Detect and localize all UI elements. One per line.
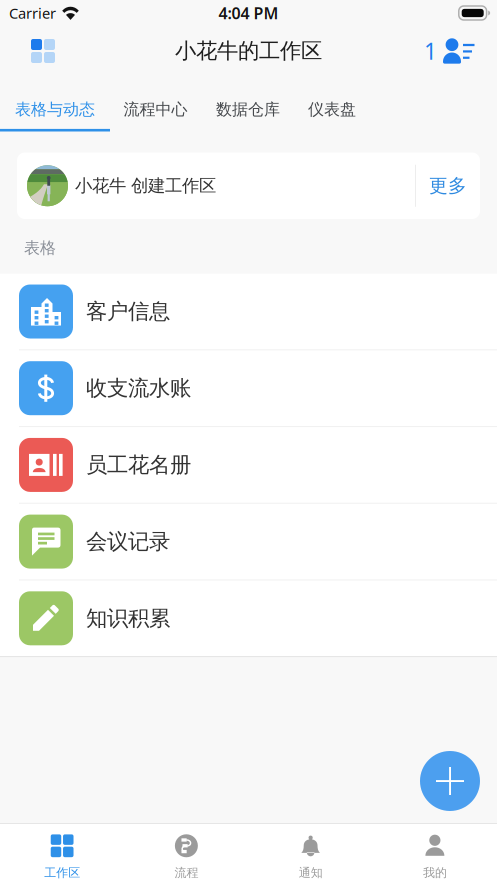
staticText: 小花牛的工作区: [175, 38, 322, 64]
staticText: 工作区: [44, 865, 80, 880]
button[interactable]: 数据仓库: [201, 76, 295, 131]
staticText: 4:04 PM: [218, 2, 278, 24]
button[interactable]: 客户信息: [0, 274, 497, 349]
staticText: 更多: [429, 174, 467, 197]
button[interactable]: 切换工作区: [24, 26, 62, 76]
button[interactable]: 知识积累: [0, 580, 497, 656]
button[interactable]: 会议记录: [0, 504, 497, 579]
staticText: 小花牛 创建工作区: [75, 175, 216, 196]
staticText: 表格: [24, 238, 56, 258]
button[interactable]: 流程中心: [110, 76, 201, 131]
staticText: 流程中心: [123, 100, 187, 119]
button[interactable]: 收支流水账: [0, 350, 497, 426]
button[interactable]: 成员 1 人: [424, 26, 475, 76]
button[interactable]: 员工花名册: [0, 427, 497, 503]
button[interactable]: 仪表盘: [295, 76, 369, 131]
staticText: 1: [424, 36, 437, 66]
button[interactable]: 我的: [373, 824, 497, 883]
staticText: 客户信息: [86, 298, 170, 325]
staticText: 收支流水账: [86, 375, 191, 401]
staticText: 我的: [423, 865, 447, 880]
staticText: 员工花名册: [86, 452, 191, 478]
staticText: 知识积累: [86, 605, 170, 631]
staticText: 会议记录: [86, 528, 170, 555]
button[interactable]: 流程: [124, 824, 248, 883]
staticText: 数据仓库: [216, 100, 280, 119]
button[interactable]: 表格与动态: [0, 76, 110, 131]
button[interactable]: 小花牛 创建工作区: [17, 152, 480, 219]
staticText: 表格与动态: [15, 100, 95, 119]
staticText: 通知: [299, 865, 323, 880]
button[interactable]: 新建: [420, 751, 480, 811]
staticText: Carrier: [9, 3, 56, 23]
staticText: 仪表盘: [308, 100, 356, 119]
button[interactable]: 工作区: [0, 824, 124, 883]
staticText: 流程: [174, 865, 198, 880]
button[interactable]: 通知: [248, 824, 373, 883]
